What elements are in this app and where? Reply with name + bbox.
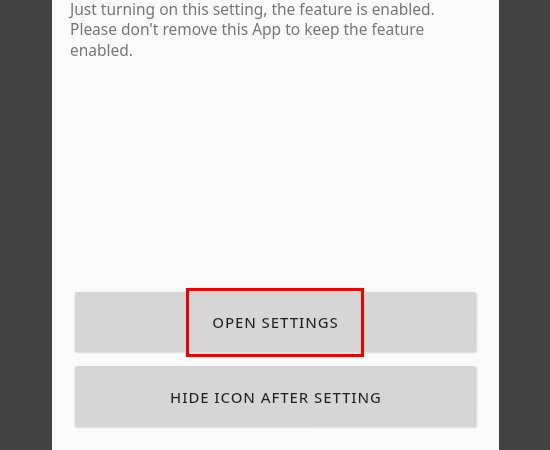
- other: Highlight around Open Settings button: [186, 288, 364, 357]
- staticText: HIDE ICON AFTER SETTING: [170, 387, 382, 407]
- button[interactable]: OPEN SETTINGS: [75, 292, 476, 352]
- staticText: Just turning on this setting, the featur…: [70, 0, 480, 61]
- staticText: OPEN SETTINGS: [212, 312, 339, 332]
- button[interactable]: HIDE ICON AFTER SETTING: [75, 366, 476, 427]
